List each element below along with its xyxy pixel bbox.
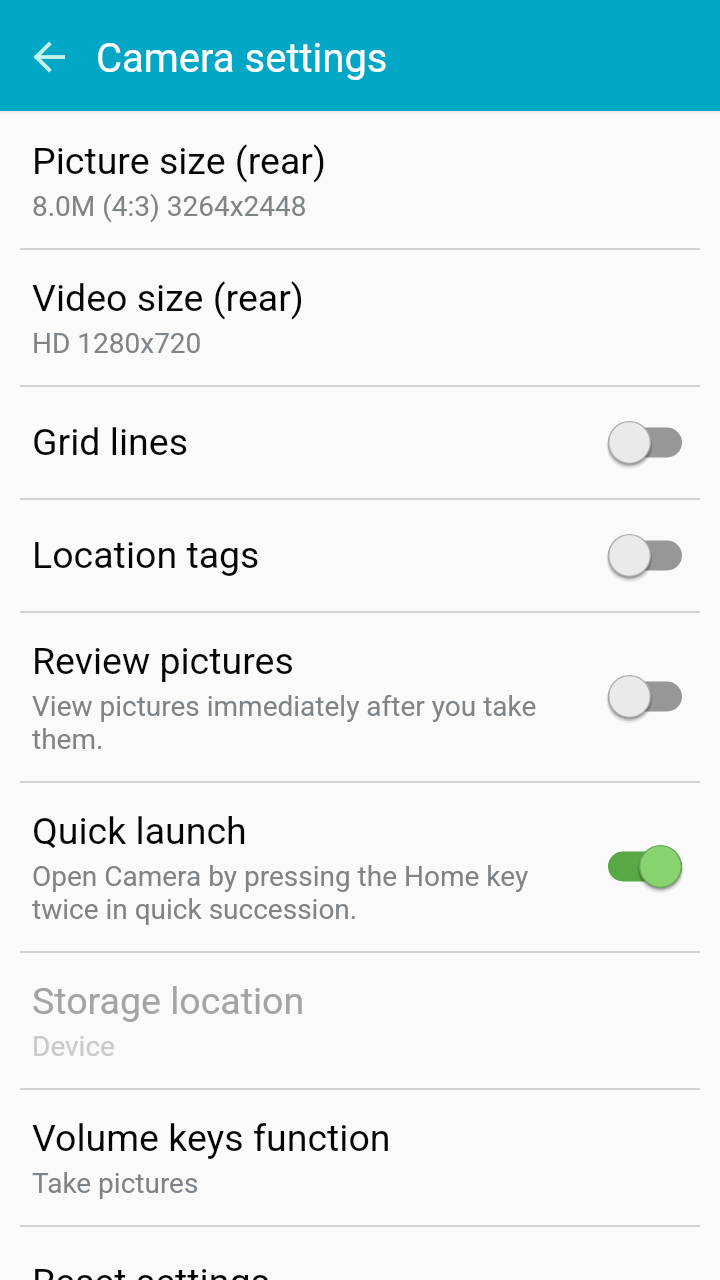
staticText: 8.0M (4:3) 3264x2448 [32,190,562,223]
staticText: Video size (rear) [32,276,304,320]
button[interactable]: Volume keys function [0,1088,720,1225]
staticText: Review pictures [32,639,294,683]
button[interactable]: Location tags [0,498,720,611]
staticText: View pictures immediately after you take… [32,690,562,756]
staticText: Device [32,1030,562,1063]
staticText: Grid lines [32,420,189,464]
button[interactable]: Review pictures [0,611,720,781]
staticText: Location tags [32,533,260,577]
button[interactable]: Storage location [0,951,720,1088]
staticText: Camera settings [96,35,388,82]
button[interactable]: Navigate up [13,21,85,93]
staticText: Storage location [32,979,305,1023]
button[interactable]: Grid lines [592,400,698,484]
button[interactable]: Location tags [592,513,698,597]
staticText: Volume keys function [32,1116,391,1160]
button[interactable]: Picture size (rear) [0,111,720,248]
staticText: Take pictures [32,1167,562,1200]
button[interactable]: Quick launch [0,781,720,951]
staticText: Open Camera by pressing the Home key twi… [32,860,562,926]
button[interactable]: Video size (rear) [0,248,720,385]
button[interactable]: Review pictures [592,654,698,738]
staticText: Reset settings [32,1260,270,1280]
button[interactable]: Grid lines [0,385,720,498]
button[interactable]: Reset settings [0,1225,720,1276]
button[interactable]: Quick launch [592,824,698,908]
staticText: Quick launch [32,809,247,853]
staticText: Picture size (rear) [32,139,327,183]
staticText: HD 1280x720 [32,327,562,360]
